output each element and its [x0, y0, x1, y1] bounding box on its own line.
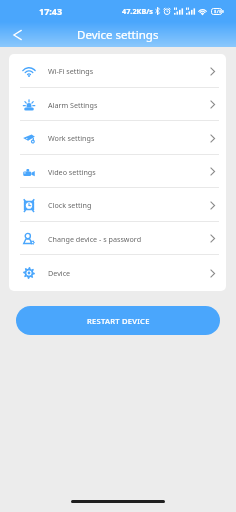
staticText: Alarm Settings — [48, 100, 98, 110]
button[interactable]: Alarm Settings — [9, 88, 226, 121]
staticText: Wi-Fi settings — [48, 66, 94, 76]
staticText: Work settings — [48, 133, 95, 143]
button[interactable]: Back — [3, 22, 31, 47]
staticText: Clock setting — [48, 200, 92, 210]
button[interactable]: Clock setting — [9, 188, 226, 222]
staticText: Device — [48, 268, 71, 278]
button[interactable]: Device — [9, 255, 226, 291]
button[interactable]: RESTART DEVICE — [16, 306, 220, 335]
button[interactable]: Change device - s password — [9, 222, 226, 255]
button[interactable]: Wi-Fi settings — [9, 54, 226, 88]
staticText: Device settings — [77, 27, 159, 43]
staticText: Change device - s password — [48, 234, 142, 244]
staticText: 47.2KB/s — [122, 6, 153, 16]
button[interactable]: Video settings — [9, 155, 226, 188]
button[interactable]: Work settings — [9, 121, 226, 155]
staticText: RESTART DEVICE — [87, 316, 150, 326]
staticText: Video settings — [48, 167, 96, 177]
staticText: 17:43 — [39, 5, 63, 17]
